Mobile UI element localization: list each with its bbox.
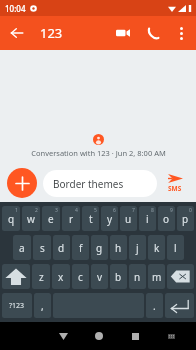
staticText: h xyxy=(115,241,122,255)
staticText: d xyxy=(58,241,65,255)
staticText: 10:04 xyxy=(5,3,26,14)
button[interactable]: l xyxy=(167,235,184,260)
button[interactable]: Border themes xyxy=(43,170,157,197)
button[interactable]: Attach xyxy=(7,168,37,198)
button[interactable]: Video call xyxy=(108,18,138,48)
staticText: g xyxy=(96,241,103,255)
staticText: u xyxy=(125,212,132,226)
button[interactable]: t xyxy=(82,206,99,231)
button[interactable]: Switch keyboard xyxy=(153,322,189,350)
staticText: b xyxy=(115,270,122,284)
staticText: , xyxy=(41,299,44,313)
button[interactable]: Home xyxy=(81,322,117,350)
staticText: e xyxy=(48,212,54,226)
button[interactable]: Send SMS xyxy=(161,173,189,193)
staticText: j xyxy=(136,241,139,255)
staticText: v xyxy=(97,270,103,284)
staticText: Conversation with 123 · Jun 2, 8:00 AM xyxy=(31,148,166,158)
staticText: 3 xyxy=(55,207,58,214)
staticText: i xyxy=(146,212,149,226)
button[interactable]: o xyxy=(158,206,175,231)
button[interactable]: k xyxy=(148,235,165,260)
staticText: Border themes xyxy=(53,177,124,191)
staticText: 0 xyxy=(189,207,192,214)
button[interactable]: p xyxy=(177,206,194,231)
staticText: 9 xyxy=(170,207,173,214)
staticText: p xyxy=(182,212,189,226)
staticText: x xyxy=(58,270,64,284)
button[interactable]: a xyxy=(13,235,31,260)
staticText: SMS xyxy=(168,184,182,193)
button[interactable]: u xyxy=(120,206,137,231)
staticText: q xyxy=(8,212,15,226)
staticText: w xyxy=(27,212,35,226)
button[interactable]: Shift xyxy=(2,264,30,289)
button[interactable]: Call xyxy=(138,18,168,48)
staticText: ?123 xyxy=(9,301,25,311)
staticText: n xyxy=(134,270,141,284)
button[interactable]: h xyxy=(110,235,127,260)
button[interactable]: Backspace xyxy=(167,264,194,289)
button[interactable]: y xyxy=(101,206,118,231)
button[interactable]: x xyxy=(52,264,70,289)
staticText: s xyxy=(40,241,45,255)
button[interactable]: z xyxy=(32,264,50,289)
staticText: z xyxy=(39,270,44,284)
staticText: 123 xyxy=(40,24,63,42)
staticText: a xyxy=(19,241,25,255)
button[interactable]: Enter xyxy=(165,293,194,318)
button[interactable]: b xyxy=(110,264,127,289)
button[interactable]: s xyxy=(33,235,51,260)
button[interactable]: c xyxy=(72,264,89,289)
button[interactable]: r xyxy=(62,206,80,231)
button[interactable]: q xyxy=(2,206,20,231)
button[interactable]: g xyxy=(91,235,108,260)
staticText: r xyxy=(69,212,74,226)
staticText: f xyxy=(79,241,83,255)
staticText: 6 xyxy=(113,207,116,214)
staticText: c xyxy=(78,270,83,284)
button[interactable]: Back xyxy=(0,16,34,50)
staticText: 7 xyxy=(132,207,135,214)
button[interactable]: More options xyxy=(168,20,194,46)
staticText: m xyxy=(152,270,162,284)
staticText: 2 xyxy=(35,207,38,214)
staticText: 5 xyxy=(94,207,97,214)
button[interactable]: Recents xyxy=(117,322,153,350)
staticText: . xyxy=(153,299,156,313)
staticText: k xyxy=(154,241,160,255)
staticText: 1 xyxy=(15,207,18,214)
staticText: 4 xyxy=(75,207,78,214)
button[interactable]: m xyxy=(148,264,165,289)
button[interactable]: w xyxy=(22,206,40,231)
button[interactable]: i xyxy=(139,206,156,231)
button[interactable]: v xyxy=(91,264,108,289)
button[interactable]: f xyxy=(72,235,89,260)
button[interactable]: ?123 xyxy=(2,293,32,318)
staticText: t xyxy=(89,212,93,226)
button[interactable]: , xyxy=(34,293,51,318)
staticText: l xyxy=(174,241,177,255)
staticText: 8 xyxy=(151,207,154,214)
button[interactable]: j xyxy=(129,235,146,260)
staticText: o xyxy=(163,212,170,226)
button[interactable]: d xyxy=(53,235,70,260)
button[interactable]: e xyxy=(42,206,60,231)
staticText: y xyxy=(107,212,113,226)
button[interactable]: n xyxy=(129,264,146,289)
button[interactable]: . xyxy=(146,293,163,318)
button[interactable]: Hide keyboard xyxy=(45,322,81,350)
